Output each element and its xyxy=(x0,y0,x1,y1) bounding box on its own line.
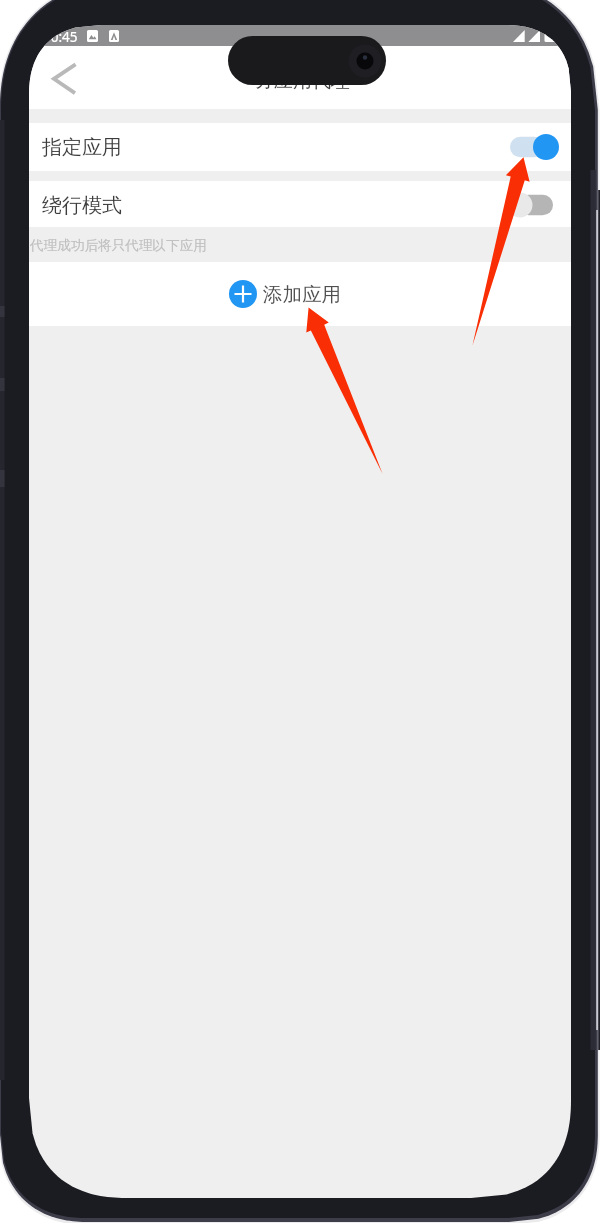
staticText: 绕行模式 xyxy=(42,193,122,218)
staticText: 添加应用 xyxy=(263,282,341,307)
staticText: 代理成功后将只代理以下应用 xyxy=(30,237,207,254)
button[interactable]: 绕行模式 xyxy=(29,181,571,227)
button[interactable]: 指定应用 xyxy=(29,123,571,171)
button[interactable]: 添加应用 xyxy=(29,262,571,326)
staticText: 分应用代理 xyxy=(255,69,350,93)
button[interactable]: Back xyxy=(40,58,80,98)
staticText: 指定应用 xyxy=(42,135,122,160)
staticText: 10:45 xyxy=(43,28,78,46)
